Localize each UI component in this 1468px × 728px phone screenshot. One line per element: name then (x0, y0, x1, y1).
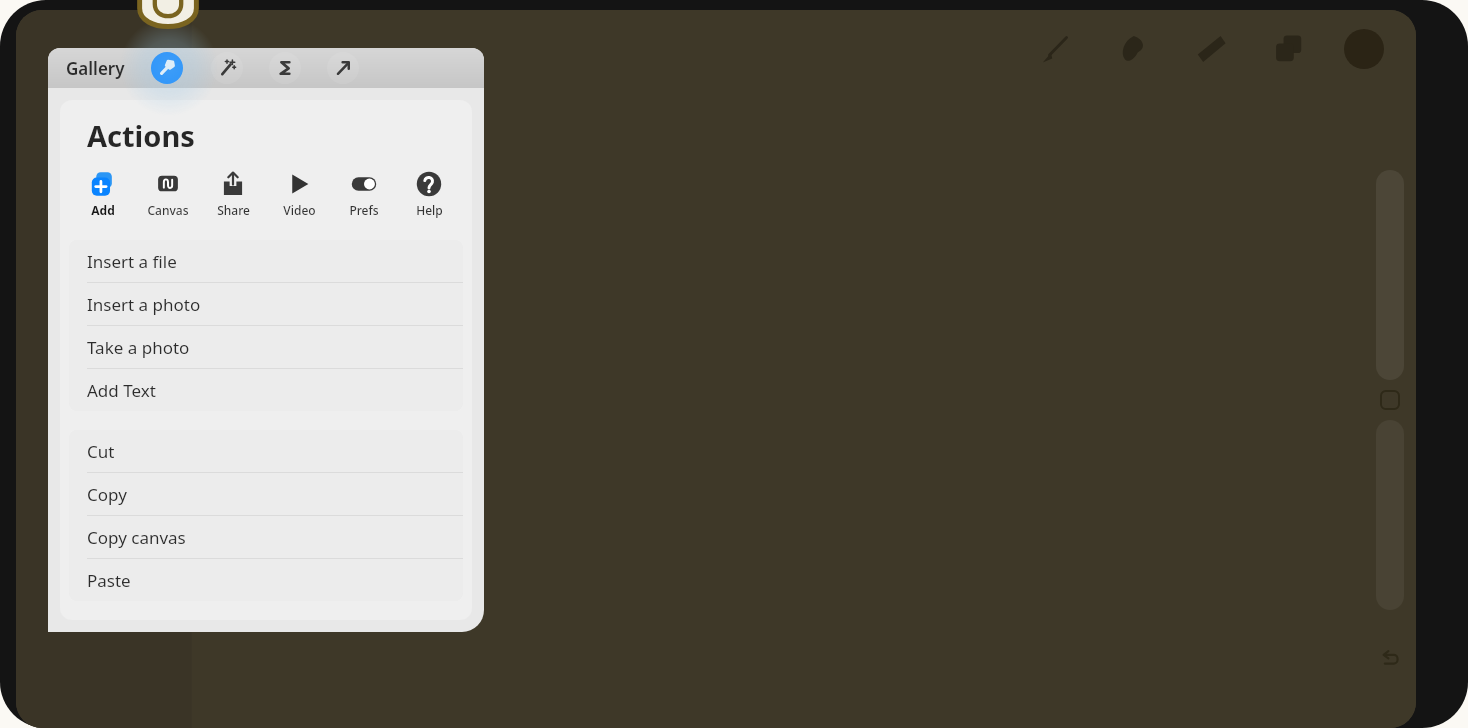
button[interactable]: Copy (69, 473, 463, 515)
button[interactable]: Layers (1268, 28, 1310, 70)
staticText: Copy (87, 483, 127, 506)
staticText: Canvas (147, 202, 189, 218)
staticText: Share (217, 202, 250, 218)
button[interactable]: Colour (1344, 29, 1384, 69)
button[interactable]: Canvas (139, 169, 197, 220)
button[interactable]: Adjustments (211, 52, 243, 84)
button[interactable]: Selection (269, 52, 301, 84)
staticText: Cut (87, 440, 115, 463)
staticText: Copy canvas (87, 526, 186, 549)
button[interactable]: Undo (1376, 644, 1404, 672)
staticText: Video (283, 202, 316, 218)
staticText: Add (91, 202, 115, 218)
staticText: Add Text (87, 379, 156, 402)
button[interactable]: Eraser (1190, 28, 1232, 70)
button[interactable]: Modify (1376, 386, 1404, 414)
staticText: Prefs (349, 202, 379, 218)
button[interactable]: Video (270, 169, 328, 220)
staticText: Help (416, 202, 443, 218)
staticText: Actions (87, 116, 195, 155)
button[interactable]: Add (74, 169, 132, 220)
button[interactable]: Actions (151, 52, 183, 84)
staticText: Gallery (66, 57, 125, 80)
button[interactable]: Insert a file (69, 240, 463, 282)
staticText: Take a photo (87, 336, 190, 359)
button[interactable]: Share (204, 169, 262, 220)
staticText: Insert a file (87, 250, 177, 273)
button[interactable]: Paste (69, 559, 463, 601)
button[interactable]: Brush (1034, 28, 1076, 70)
button[interactable]: Smudge (1112, 28, 1154, 70)
button[interactable]: Insert a photo (69, 283, 463, 325)
button[interactable]: Take a photo (69, 326, 463, 368)
button[interactable]: Cut (69, 430, 463, 472)
button[interactable]: Help (400, 169, 458, 220)
button[interactable]: Copy canvas (69, 516, 463, 558)
button[interactable]: Gallery (64, 52, 127, 85)
button[interactable]: Add Text (69, 369, 463, 411)
staticText: Paste (87, 569, 131, 592)
staticText: Insert a photo (87, 293, 201, 316)
button[interactable]: Transform (327, 52, 359, 84)
other: Stylus (135, 0, 201, 36)
button[interactable]: Prefs (335, 169, 393, 220)
